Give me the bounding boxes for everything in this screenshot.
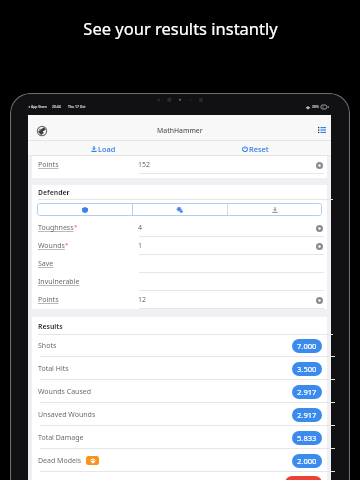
staticText: Wounds Caused [38, 387, 92, 397]
button[interactable]: Import [228, 203, 322, 216]
staticText: Shots [38, 341, 57, 351]
staticText: 30% [312, 104, 319, 109]
button[interactable]: Mortal Wounds [32, 472, 327, 480]
staticText: Wounds [38, 241, 65, 251]
staticText: Load [98, 144, 116, 154]
button[interactable]: Wounds [32, 237, 327, 255]
staticText: MathHammer [157, 126, 203, 135]
staticText: Dead Models [38, 456, 82, 466]
staticText: Points [38, 160, 59, 170]
staticText: Thu 17 Oct [68, 104, 86, 109]
button[interactable]: Points [32, 156, 327, 174]
staticText: 4 [138, 223, 143, 233]
staticText: Results [38, 322, 63, 331]
staticText: * [74, 223, 78, 231]
staticText: 7.000 [297, 341, 317, 351]
button[interactable]: Defender profile [37, 203, 132, 216]
staticText: * [65, 241, 69, 249]
button[interactable]: App logo [30, 119, 53, 142]
staticText: Points [38, 295, 59, 305]
button[interactable]: Load [28, 141, 179, 156]
button[interactable]: Unsaved Wounds [32, 403, 327, 426]
button[interactable]: Wounds Caused [32, 380, 327, 403]
staticText: 2.917 [297, 387, 317, 397]
button[interactable]: Points [32, 291, 327, 309]
button[interactable]: Settings [133, 203, 227, 216]
button[interactable]: Total Damage [32, 426, 327, 449]
staticText: Reset [249, 144, 269, 154]
staticText: 20:44 [52, 104, 61, 109]
staticText: 2.917 [297, 410, 317, 420]
staticText: 3.500 [297, 364, 317, 374]
button[interactable]: Reset [179, 141, 331, 156]
staticText: Total Damage [38, 433, 84, 443]
staticText: 12 [138, 295, 147, 305]
staticText: Toughness [38, 223, 74, 233]
staticText: See your results instantly [83, 17, 278, 39]
staticText: Total Hits [38, 364, 69, 374]
button[interactable]: Toughness [32, 219, 327, 237]
button[interactable]: Saved list [311, 119, 333, 141]
button[interactable]: Invulnerable [32, 273, 327, 291]
button[interactable]: Shots [32, 335, 327, 357]
button[interactable]: Total Hits [32, 357, 327, 380]
staticText: Defender [38, 188, 70, 197]
staticText: Save [38, 259, 54, 269]
staticText: 1 [138, 241, 143, 251]
staticText: Invulnerable [38, 277, 80, 287]
button[interactable]: Dead Models [32, 449, 327, 472]
button[interactable]: Save [32, 255, 327, 273]
staticText: App Store [31, 104, 47, 109]
staticText: 152 [138, 160, 151, 170]
staticText: 5.833 [297, 433, 317, 443]
staticText: 2.000 [297, 456, 317, 466]
staticText: Unsaved Wounds [38, 410, 96, 420]
